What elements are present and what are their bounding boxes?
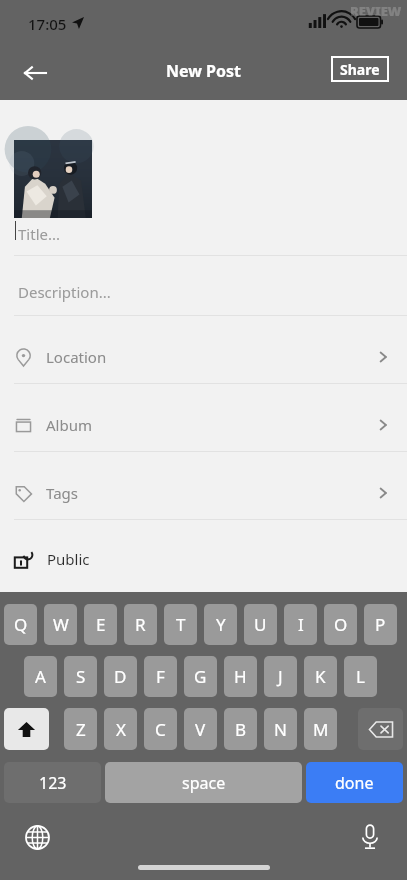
button[interactable]: S	[64, 656, 97, 697]
staticText: New Post	[0, 60, 407, 82]
staticText: M	[313, 718, 329, 741]
staticText: S	[76, 665, 86, 688]
button[interactable]: X	[104, 708, 137, 750]
staticText: H	[234, 665, 247, 688]
button[interactable]: done	[306, 762, 403, 803]
button[interactable]: Backspace	[358, 708, 403, 750]
staticText: R	[135, 613, 146, 636]
staticText: Tags	[46, 483, 78, 503]
staticText: J	[278, 665, 283, 688]
staticText: D	[114, 665, 127, 688]
button[interactable]	[14, 140, 92, 218]
button[interactable]: Y	[204, 604, 237, 645]
staticText: N	[274, 718, 287, 741]
staticText: REVIEW	[350, 2, 402, 20]
staticText: U	[254, 613, 267, 636]
button[interactable]: A	[24, 656, 57, 697]
staticText: Share	[340, 60, 380, 79]
button[interactable]: V	[184, 708, 217, 750]
button[interactable]: Location	[0, 333, 407, 381]
button[interactable]: T	[164, 604, 197, 645]
staticText: Location	[46, 347, 107, 367]
button[interactable]: E	[84, 604, 117, 645]
button[interactable]: J	[264, 656, 297, 697]
staticText: space	[182, 772, 226, 794]
button[interactable]: D	[104, 656, 137, 697]
button[interactable]: M	[304, 708, 337, 750]
staticText: Public	[47, 549, 90, 569]
button[interactable]: Voice input	[347, 814, 393, 860]
button[interactable]: Z	[64, 708, 97, 750]
staticText: O	[334, 613, 348, 636]
staticText: Album	[46, 415, 92, 435]
button[interactable]: Public	[0, 537, 407, 581]
button[interactable]: B	[224, 708, 257, 750]
button[interactable]: G	[184, 656, 217, 697]
button[interactable]: W	[44, 604, 77, 645]
staticText: K	[315, 665, 326, 688]
button[interactable]: R	[124, 604, 157, 645]
staticText: Description...	[18, 282, 111, 302]
staticText: C	[155, 718, 166, 741]
staticText: B	[235, 718, 247, 741]
staticText: G	[194, 665, 207, 688]
button[interactable]: F	[144, 656, 177, 697]
button[interactable]: C	[144, 708, 177, 750]
button[interactable]: Tags	[0, 469, 407, 517]
staticText: Y	[216, 613, 226, 636]
staticText: E	[96, 613, 106, 636]
staticText: 17:05	[28, 14, 67, 34]
button[interactable]: Back	[14, 52, 56, 94]
staticText: 123	[39, 772, 67, 794]
staticText: V	[195, 718, 206, 741]
button[interactable]: P	[364, 604, 397, 645]
button[interactable]: Q	[4, 604, 37, 645]
staticText: F	[156, 665, 165, 688]
staticText: Z	[76, 718, 86, 741]
button[interactable]: I	[284, 604, 317, 645]
button[interactable]: H	[224, 656, 257, 697]
button[interactable]: Change keyboard language	[14, 814, 60, 860]
staticText: Q	[14, 613, 28, 636]
button[interactable]: 123	[4, 762, 101, 803]
button[interactable]: Shift	[4, 708, 49, 750]
staticText: A	[35, 665, 46, 688]
button[interactable]: K	[304, 656, 337, 697]
staticText: X	[116, 718, 126, 741]
button[interactable]: Share	[331, 56, 389, 82]
button[interactable]: Album	[0, 401, 407, 449]
staticText: P	[375, 613, 386, 636]
staticText: done	[335, 772, 374, 794]
button[interactable]: L	[344, 656, 377, 697]
staticText: Title...	[18, 224, 61, 244]
button[interactable]: U	[244, 604, 277, 645]
staticText: T	[176, 613, 186, 636]
button[interactable]: O	[324, 604, 357, 645]
staticText: W	[53, 613, 69, 636]
button[interactable]: space	[105, 762, 302, 803]
button[interactable]: N	[264, 708, 297, 750]
staticText: I	[298, 613, 304, 636]
staticText: L	[356, 665, 365, 688]
